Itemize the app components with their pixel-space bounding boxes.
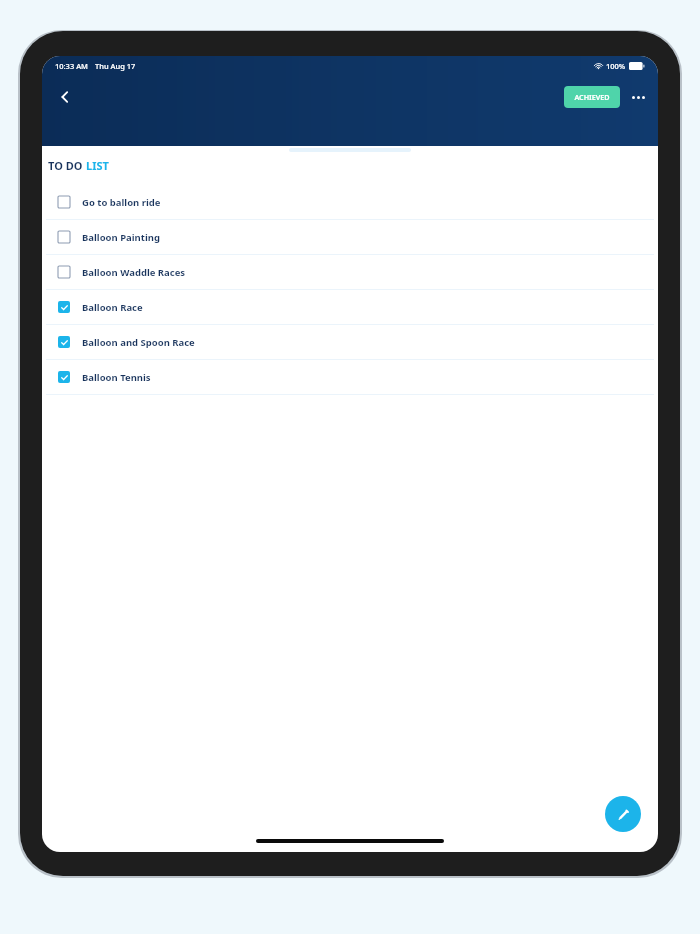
button[interactable]: Edit <box>605 796 641 832</box>
staticText: Go to ballon ride <box>82 196 161 209</box>
staticText: LIST <box>86 158 109 173</box>
staticText: 100% <box>606 61 626 71</box>
button[interactable]: Back <box>50 82 80 112</box>
button[interactable]: More options <box>627 86 649 108</box>
staticText: 10:33 AM <box>55 61 88 71</box>
staticText: ACHIEVED <box>574 92 610 102</box>
button[interactable]: Balloon Waddle Races <box>42 255 658 290</box>
button[interactable]: Go to ballon ride <box>42 185 658 220</box>
staticText: Thu Aug 17 <box>95 61 136 71</box>
button[interactable]: Balloon and Spoon Race <box>42 325 658 360</box>
staticText: TO DO <box>48 158 86 173</box>
button[interactable]: Balloon Painting <box>42 220 658 255</box>
button[interactable]: Balloon Race <box>42 290 658 325</box>
button[interactable]: Balloon Tennis <box>42 360 658 395</box>
button[interactable]: ACHIEVED <box>564 86 620 108</box>
staticText: Balloon Waddle Races <box>82 266 186 279</box>
staticText: Balloon Painting <box>82 231 160 244</box>
staticText: Balloon and Spoon Race <box>82 336 195 349</box>
staticText: Balloon Tennis <box>82 371 151 384</box>
staticText: Balloon Race <box>82 301 143 314</box>
